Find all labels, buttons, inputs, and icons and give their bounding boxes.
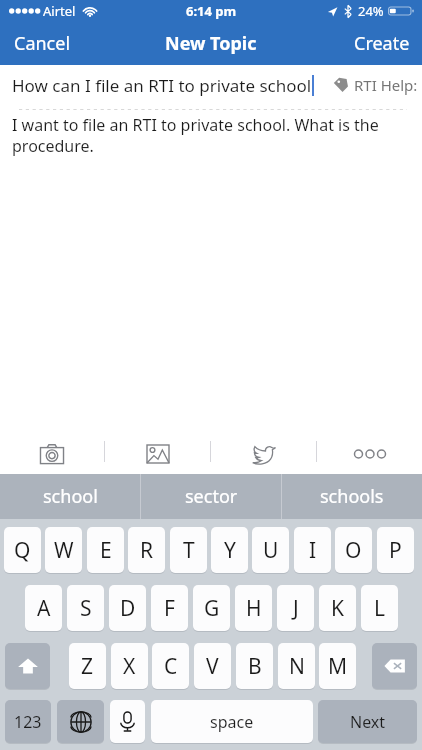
staticText: S xyxy=(80,594,92,623)
button[interactable]: Y xyxy=(211,527,248,573)
staticText: space xyxy=(210,711,254,733)
staticText: 6:14 pm xyxy=(186,2,237,20)
button[interactable]: Z xyxy=(69,643,106,689)
other: Next keyboard xyxy=(57,700,104,743)
button[interactable]: Camera xyxy=(0,429,104,474)
button[interactable] xyxy=(372,643,417,689)
staticText: I xyxy=(309,536,317,565)
staticText: Create xyxy=(354,31,410,56)
button[interactable]: V xyxy=(194,643,231,689)
staticText: W xyxy=(54,536,74,565)
staticText: N xyxy=(289,652,305,681)
button[interactable]: S xyxy=(67,585,104,631)
staticText: Cancel xyxy=(14,31,71,56)
staticText: G xyxy=(204,594,220,623)
button[interactable]: 123 xyxy=(5,700,51,743)
staticText: T xyxy=(183,536,195,565)
staticText: L xyxy=(374,594,386,623)
button[interactable]: RTI Help: xyxy=(333,75,418,95)
staticText: Next xyxy=(350,711,386,733)
staticText: J xyxy=(293,594,299,623)
staticText: How can I file an RTI to private school xyxy=(12,74,312,97)
other: Shift xyxy=(5,643,50,689)
button[interactable]: Q xyxy=(4,527,41,573)
button[interactable]: Next xyxy=(318,700,417,743)
button[interactable]: G xyxy=(193,585,230,631)
staticText: P xyxy=(389,536,402,565)
staticText: H xyxy=(246,594,262,623)
button[interactable]: space xyxy=(151,700,313,743)
staticText: Z xyxy=(81,652,94,681)
button[interactable]: K xyxy=(319,585,356,631)
staticText: school xyxy=(43,484,98,509)
staticText: D xyxy=(120,594,136,623)
button[interactable]: Photos xyxy=(105,429,210,474)
other: Backspace xyxy=(372,643,417,689)
button[interactable]: N xyxy=(278,643,315,689)
staticText: A xyxy=(37,594,51,623)
staticText: schools xyxy=(320,484,384,509)
button[interactable] xyxy=(5,643,50,689)
staticText: sector xyxy=(185,484,238,509)
other: Dictation xyxy=(110,700,145,743)
button[interactable]: More options xyxy=(317,429,422,474)
staticText: K xyxy=(331,594,344,623)
button[interactable] xyxy=(57,700,104,743)
staticText: B xyxy=(248,652,262,681)
button[interactable]: B xyxy=(236,643,273,689)
button[interactable] xyxy=(110,700,145,743)
button[interactable]: C xyxy=(152,643,189,689)
button[interactable]: sector xyxy=(141,474,281,519)
staticText: E xyxy=(100,536,112,565)
staticText: 123 xyxy=(14,711,42,733)
staticText: 24% xyxy=(358,2,384,20)
staticText: O xyxy=(345,536,362,565)
staticText: I want to file an RTI to private school.… xyxy=(12,114,382,157)
button[interactable]: U xyxy=(252,527,289,573)
staticText: Y xyxy=(224,536,236,565)
button[interactable]: Cancel xyxy=(0,25,85,62)
staticText: R xyxy=(140,536,154,565)
staticText: U xyxy=(263,536,279,565)
button[interactable]: F xyxy=(151,585,188,631)
staticText: RTI Help: xyxy=(354,75,418,95)
button[interactable]: T xyxy=(170,527,207,573)
button[interactable]: E xyxy=(87,527,124,573)
button[interactable]: X xyxy=(111,643,148,689)
button[interactable]: M xyxy=(319,643,356,689)
staticText: Airtel xyxy=(43,2,76,20)
button[interactable]: Create xyxy=(340,25,422,62)
staticText: F xyxy=(164,594,175,623)
staticText: New Topic xyxy=(165,31,257,56)
button[interactable]: L xyxy=(361,585,398,631)
button[interactable]: H xyxy=(235,585,272,631)
button[interactable]: J xyxy=(277,585,314,631)
button[interactable]: R xyxy=(128,527,165,573)
staticText: V xyxy=(206,652,219,681)
staticText: M xyxy=(328,652,348,681)
staticText: C xyxy=(164,652,178,681)
button[interactable]: I xyxy=(294,527,331,573)
button[interactable]: schools xyxy=(282,474,422,519)
button[interactable]: D xyxy=(109,585,146,631)
button[interactable]: A xyxy=(25,585,62,631)
button[interactable]: O xyxy=(335,527,372,573)
button[interactable]: Twitter xyxy=(211,429,316,474)
button[interactable]: P xyxy=(377,527,414,573)
staticText: Q xyxy=(14,536,31,565)
button[interactable]: school xyxy=(0,474,140,519)
staticText: X xyxy=(123,652,136,681)
button[interactable]: W xyxy=(45,527,82,573)
